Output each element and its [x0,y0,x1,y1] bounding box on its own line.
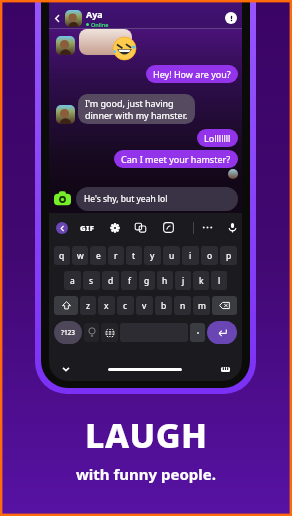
staticText: Lolllllll [204,132,231,144]
staticText: a [70,275,75,287]
staticText: v [142,300,147,312]
button[interactable]: j [175,271,191,290]
staticText: d [108,275,114,287]
button[interactable]: Can I meet your hamster? [114,150,238,168]
button[interactable]: Enter [207,321,237,344]
button[interactable]: c [117,296,134,315]
staticText: Can I meet your hamster? [121,153,231,165]
staticText: k [199,275,204,287]
staticText: g [144,275,150,287]
staticText: Hey! How are you? [153,68,231,80]
button[interactable]: n [174,296,191,315]
button[interactable]: e [90,246,106,265]
button[interactable]: o [201,246,218,265]
button[interactable]: i [182,246,199,265]
button[interactable]: f [121,271,137,290]
staticText: t [132,250,136,262]
staticText: c [123,300,128,312]
staticText: i [189,250,192,262]
button[interactable]: m [193,296,210,315]
staticText: r [114,250,118,262]
button[interactable]: s [83,271,100,290]
staticText: b [161,300,167,312]
button[interactable]: Hide keyboard [60,363,72,375]
button[interactable]: z [80,296,96,315]
button[interactable]: Language [101,323,118,342]
staticText: He's shy, but yeah lol [84,193,168,205]
button[interactable]: Camera [54,190,71,207]
button[interactable]: Change keyboard [219,363,231,375]
staticText: h [162,275,168,287]
button[interactable]: t [126,246,142,265]
staticText: x [104,300,109,312]
staticText: GIF [80,223,95,233]
button[interactable]: Close toolbar [56,222,68,234]
button[interactable]: w [72,246,88,265]
staticText: u [169,250,175,262]
staticText: y [150,250,155,262]
button[interactable]: Symbols [54,321,82,344]
button[interactable]: Hey! How are you? [146,65,238,83]
button[interactable]: d [102,271,119,290]
button[interactable]: Emoji [84,323,99,342]
button[interactable]: q [54,246,70,265]
button[interactable]: r [108,246,124,265]
button[interactable]: Shift [54,296,78,315]
button[interactable]: Period [190,323,205,342]
staticText: with funny people. [76,464,216,484]
button[interactable]: More options [201,221,214,234]
button[interactable]: Stickers [162,221,175,234]
button[interactable]: l [211,271,227,290]
staticText: I'm good, just having dinner with my ham… [85,97,188,121]
button[interactable]: x [98,296,115,315]
staticText: m [198,300,206,312]
staticText: l [218,275,221,287]
button[interactable]: k [193,271,209,290]
button[interactable]: Voice input [226,221,239,234]
button[interactable]: b [155,296,172,315]
staticText: e [96,250,101,262]
staticText: z [86,300,90,312]
button[interactable]: He's shy, but yeah lol [76,187,238,211]
button[interactable]: p [220,246,237,265]
button[interactable]: h [157,271,173,290]
button[interactable]: GIF [80,223,95,233]
button[interactable]: v [136,296,153,315]
button[interactable]: a [64,271,81,290]
button[interactable]: Report [225,12,237,24]
staticText: o [207,250,213,262]
staticText: n [180,300,186,312]
button[interactable]: Clipboard [134,221,147,234]
button[interactable]: y [144,246,161,265]
button[interactable]: g [139,271,155,290]
button[interactable]: Back [51,12,64,25]
staticText: ?123 [61,328,76,337]
staticText: p [226,250,232,262]
staticText: Online [91,21,109,28]
staticText: s [89,275,94,287]
staticText: Aya [86,8,103,20]
button[interactable]: Backspace [212,296,237,315]
staticText: f [128,275,131,287]
button[interactable]: I'm good, just having dinner with my ham… [78,94,195,124]
button[interactable]: Lolllllll [197,129,238,147]
staticText: LAUGH [85,412,208,458]
staticText: q [59,250,65,262]
button[interactable]: u [163,246,180,265]
staticText: w [77,250,84,262]
button[interactable]: Settings [108,221,121,234]
staticText: j [182,275,185,287]
